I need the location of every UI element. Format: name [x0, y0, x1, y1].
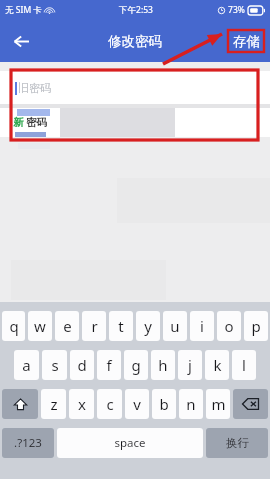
staticText: r — [91, 316, 98, 336]
staticText: 下午2:53 — [119, 4, 153, 16]
button[interactable]: f — [97, 350, 121, 380]
staticText: u — [170, 316, 180, 336]
staticText: m — [211, 394, 226, 414]
button[interactable]: 旧密码 — [0, 71, 270, 104]
button[interactable]: p — [244, 311, 268, 341]
button[interactable]: g — [124, 350, 148, 380]
button[interactable]: 存储 — [228, 30, 264, 52]
staticText: v — [133, 394, 141, 414]
staticText: 73% — [228, 4, 245, 16]
button[interactable]: v — [125, 389, 149, 419]
button[interactable]: Shift — [2, 389, 38, 419]
button[interactable]: b — [152, 389, 176, 419]
button[interactable]: i — [190, 311, 214, 341]
button[interactable]: space — [57, 428, 203, 458]
button[interactable]: t — [109, 311, 133, 341]
staticText: 密码 — [26, 116, 47, 129]
button[interactable]: j — [178, 350, 202, 380]
button[interactable]: Backspace — [233, 389, 268, 419]
button[interactable]: o — [217, 311, 241, 341]
staticText: o — [224, 316, 234, 336]
staticText: 无 SIM 卡 — [5, 4, 42, 16]
button[interactable]: y — [136, 311, 160, 341]
staticText: 换行 — [226, 436, 249, 450]
staticText: p — [251, 316, 261, 336]
button[interactable]: a — [14, 350, 39, 380]
button[interactable]: s — [42, 350, 67, 380]
staticText: i — [200, 316, 204, 336]
button[interactable]: d — [70, 350, 94, 380]
staticText: t — [118, 316, 124, 336]
button[interactable]: u — [163, 311, 187, 341]
staticText: q — [9, 316, 19, 336]
button[interactable]: 换行 — [206, 428, 268, 458]
staticText: 新 — [13, 116, 24, 129]
button[interactable]: h — [151, 350, 175, 380]
button[interactable]: z — [41, 389, 66, 419]
staticText: a — [22, 355, 31, 375]
staticText: c — [106, 394, 114, 414]
button[interactable]: r — [82, 311, 106, 341]
staticText: e — [63, 316, 72, 336]
button[interactable]: k — [205, 350, 229, 380]
button[interactable]: w — [28, 311, 52, 341]
staticText: l — [242, 355, 246, 375]
staticText: s — [51, 355, 59, 375]
staticText: k — [213, 355, 222, 375]
staticText: 旧密码 — [18, 81, 51, 95]
staticText: f — [106, 355, 112, 375]
button[interactable]: Back — [5, 25, 38, 58]
button[interactable]: n — [179, 389, 203, 419]
button[interactable]: l — [232, 350, 256, 380]
staticText: x — [78, 394, 86, 414]
staticText: d — [77, 355, 87, 375]
staticText: b — [159, 394, 169, 414]
staticText: h — [158, 355, 168, 375]
button[interactable]: x — [69, 389, 94, 419]
button[interactable]: .?123 — [2, 428, 54, 458]
button[interactable]: m — [206, 389, 230, 419]
staticText: y — [144, 316, 152, 336]
staticText: z — [50, 394, 58, 414]
staticText: 存储 — [233, 33, 260, 50]
staticText: j — [188, 355, 192, 375]
button[interactable]: 新 — [0, 108, 270, 137]
staticText: w — [34, 316, 46, 336]
staticText: .?123 — [14, 435, 42, 451]
staticText: space — [114, 435, 146, 451]
staticText: g — [131, 355, 141, 375]
staticText: n — [186, 394, 196, 414]
button[interactable]: q — [2, 311, 25, 341]
button[interactable]: c — [97, 389, 122, 419]
button[interactable]: e — [55, 311, 79, 341]
staticText: 修改密码 — [108, 33, 162, 50]
